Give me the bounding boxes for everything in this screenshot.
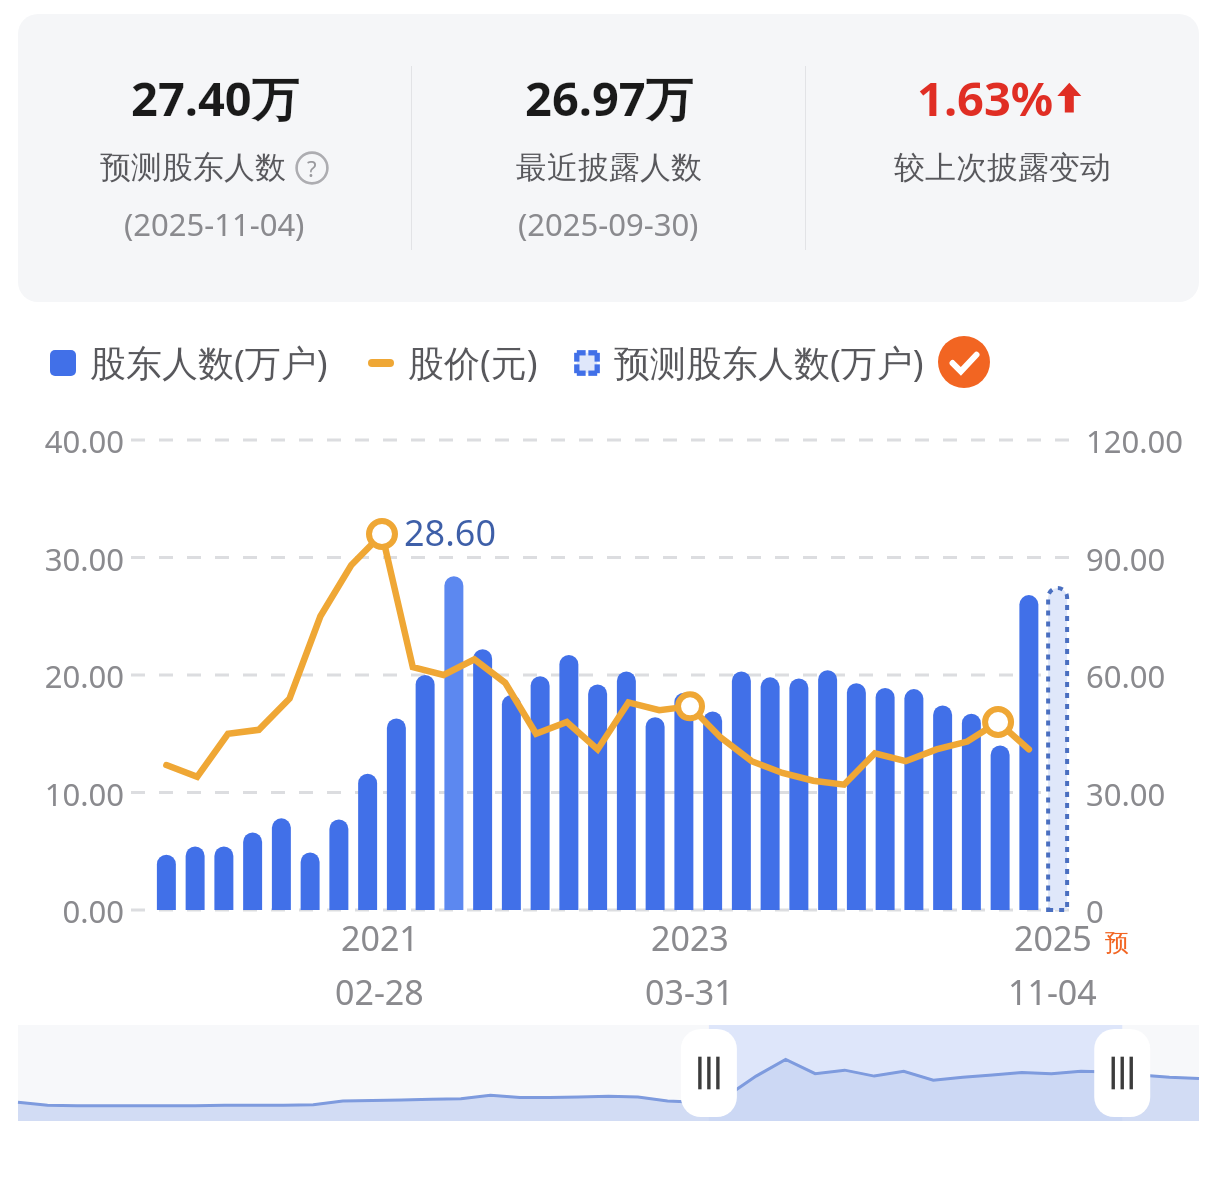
staticText: 预测股东人数 bbox=[100, 148, 286, 187]
staticText: 股东人数(万户) bbox=[90, 338, 328, 387]
staticText: 2025 bbox=[1014, 915, 1092, 961]
button[interactable]: 已选中 bbox=[938, 336, 990, 388]
staticText: 26.97万 bbox=[525, 66, 693, 130]
button[interactable]: 帮助说明 bbox=[295, 151, 329, 185]
button[interactable]: 股东人数(万户) bbox=[50, 338, 328, 387]
staticText: 40.00 bbox=[0, 420, 124, 462]
staticText: 0.00 bbox=[0, 890, 124, 932]
staticText: 30.00 bbox=[1086, 773, 1166, 815]
staticText: 10.00 bbox=[0, 773, 124, 815]
button[interactable]: 1.63% bbox=[806, 14, 1199, 302]
staticText: 预测股东人数(万户) bbox=[614, 338, 924, 387]
staticText: 90.00 bbox=[1086, 538, 1166, 580]
staticText: 最近披露人数 bbox=[516, 148, 702, 187]
staticText: 120.00 bbox=[1086, 420, 1183, 462]
button[interactable]: 股价(元) bbox=[368, 338, 538, 387]
staticText: 30.00 bbox=[0, 538, 124, 580]
staticText: 20.00 bbox=[0, 655, 124, 697]
staticText: 2023 bbox=[651, 915, 729, 961]
button[interactable]: 预测股东人数(万户) bbox=[574, 338, 924, 387]
staticText: 60.00 bbox=[1086, 655, 1166, 697]
staticText: (2025-09-30) bbox=[518, 203, 699, 245]
staticText: ? bbox=[307, 153, 317, 183]
staticText: 预 bbox=[1105, 928, 1129, 958]
staticText: 2021 bbox=[341, 915, 419, 961]
button[interactable]: 27.40万 bbox=[18, 14, 411, 302]
staticText: 股价(元) bbox=[408, 338, 538, 387]
staticText: 03-31 bbox=[645, 969, 734, 1015]
staticText: 0 bbox=[1086, 890, 1104, 932]
button[interactable]: 26.97万 bbox=[412, 14, 805, 302]
staticText: 1.63% bbox=[917, 66, 1054, 130]
staticText: 较上次披露变动 bbox=[894, 148, 1111, 187]
staticText: 27.40万 bbox=[131, 66, 299, 130]
staticText: 11-04 bbox=[1008, 969, 1097, 1015]
staticText: (2025-11-04) bbox=[124, 203, 305, 245]
staticText: 02-28 bbox=[335, 969, 424, 1015]
staticText: 28.60 bbox=[404, 508, 497, 557]
button[interactable]: 时间范围选择 bbox=[18, 1025, 1199, 1121]
